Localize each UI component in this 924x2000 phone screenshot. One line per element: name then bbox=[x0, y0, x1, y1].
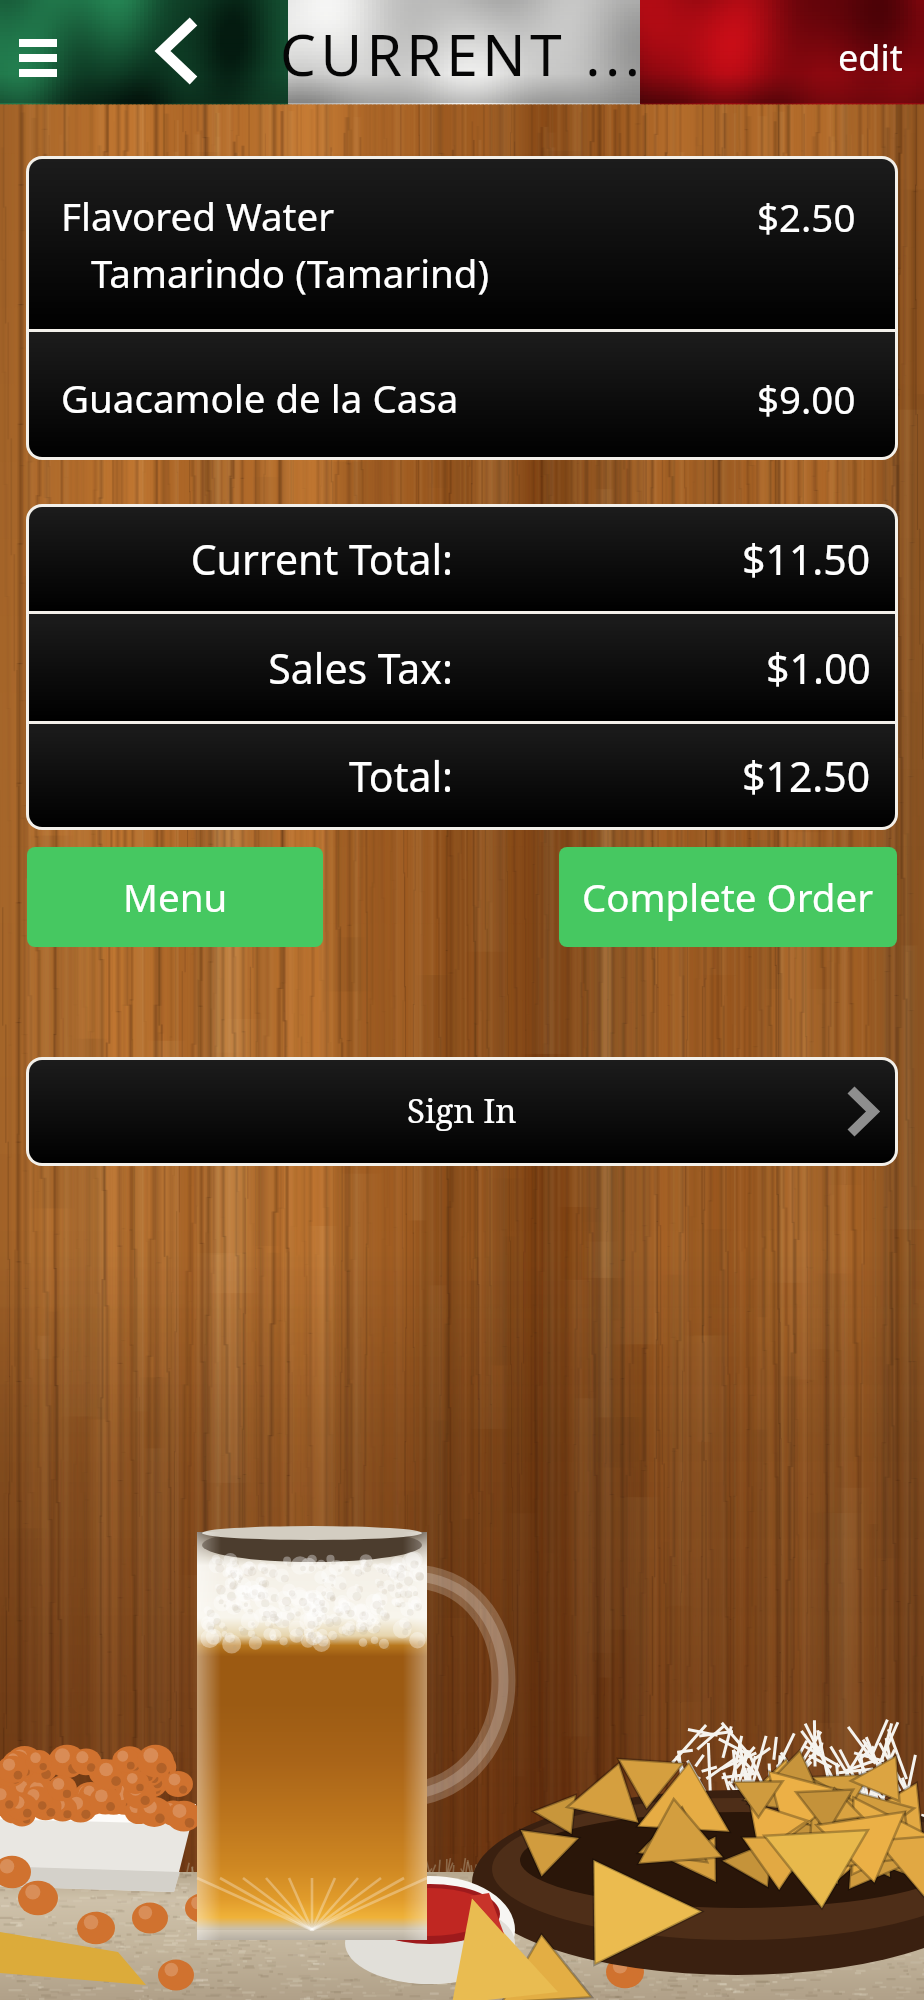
button[interactable]: Back bbox=[137, 0, 215, 100]
staticText: CURRENT ... bbox=[280, 15, 645, 93]
staticText: $1.00 bbox=[766, 640, 871, 696]
staticText: Current Total: bbox=[63, 531, 453, 587]
staticText: $2.50 bbox=[757, 191, 856, 243]
button[interactable]: Total: bbox=[29, 724, 895, 827]
staticText: $9.00 bbox=[757, 373, 856, 425]
button[interactable]: Sales Tax: bbox=[29, 614, 895, 721]
staticText: Sign In bbox=[407, 1088, 517, 1133]
button[interactable]: Flavored Water Tamarindo (Tamarind) bbox=[29, 159, 895, 329]
button[interactable]: Sign In bbox=[29, 1060, 895, 1163]
button[interactable]: Guacamole de la Casa bbox=[29, 332, 895, 457]
button[interactable]: Complete Order bbox=[559, 847, 897, 947]
staticText: Menu bbox=[123, 871, 228, 923]
staticText: Flavored Water Tamarindo (Tamarind) bbox=[61, 190, 490, 299]
button[interactable]: Current Total: bbox=[29, 507, 895, 611]
staticText: $11.50 bbox=[742, 531, 871, 587]
staticText: Sales Tax: bbox=[63, 640, 453, 696]
staticText: edit bbox=[838, 33, 903, 82]
staticText: Total: bbox=[63, 748, 453, 804]
staticText: $12.50 bbox=[742, 748, 871, 804]
button[interactable]: edit bbox=[816, 23, 924, 92]
staticText: Complete Order bbox=[582, 871, 874, 923]
button[interactable]: Open navigation menu bbox=[1, 21, 75, 95]
staticText: Guacamole de la Casa bbox=[61, 372, 459, 424]
button[interactable]: Menu bbox=[27, 847, 323, 947]
